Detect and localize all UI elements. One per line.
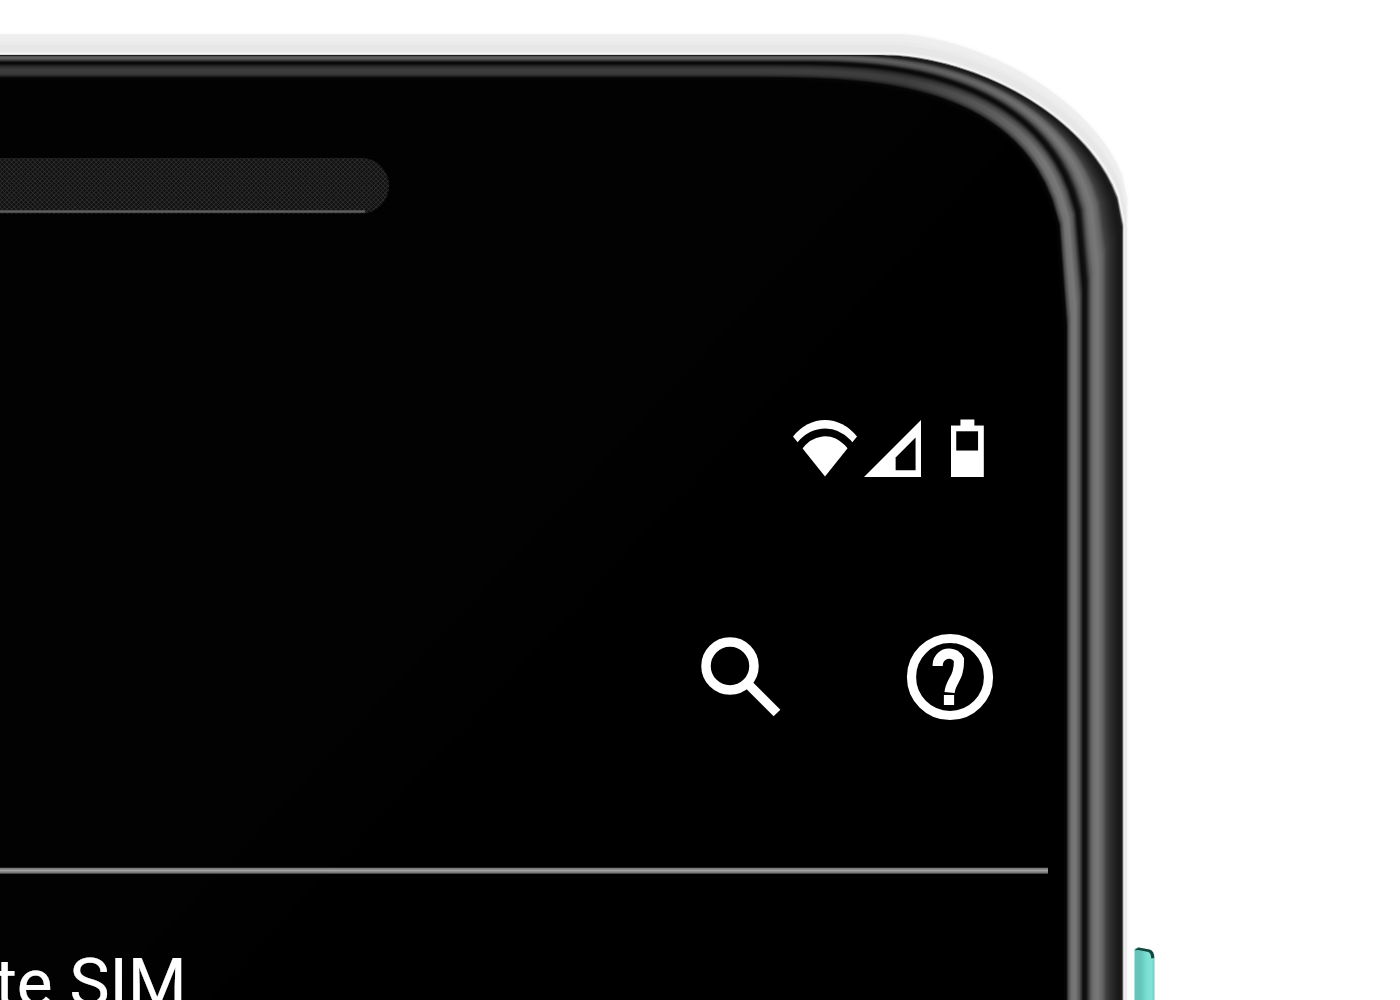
button[interactable]: Help	[886, 613, 1014, 741]
staticText: Activate SIM	[0, 943, 187, 1000]
button[interactable]: Activate SIM	[0, 873, 780, 1000]
button[interactable]: Search	[666, 602, 794, 730]
